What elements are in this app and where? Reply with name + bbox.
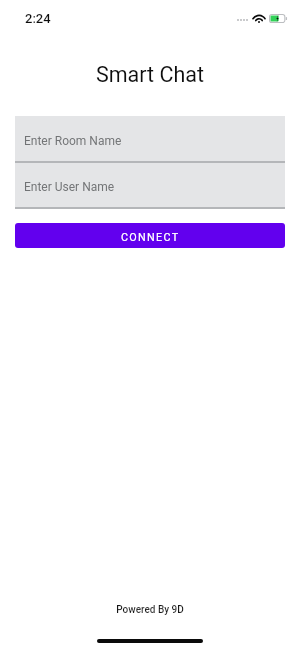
staticText: 2:24 xyxy=(25,11,51,26)
button[interactable]: Enter Room Name xyxy=(15,116,285,161)
button[interactable]: CONNECT xyxy=(15,223,285,248)
other: Wi-Fi signal xyxy=(253,14,265,23)
staticText: Enter User Name xyxy=(24,180,115,194)
other: Cellular signal xyxy=(237,19,248,21)
staticText: Smart Chat xyxy=(0,62,300,87)
other: Battery charging xyxy=(269,14,288,23)
staticText: Enter Room Name xyxy=(24,134,122,148)
button[interactable]: Enter User Name xyxy=(15,163,285,207)
staticText: Powered By 9D xyxy=(0,604,300,616)
staticText: CONNECT xyxy=(121,231,180,244)
